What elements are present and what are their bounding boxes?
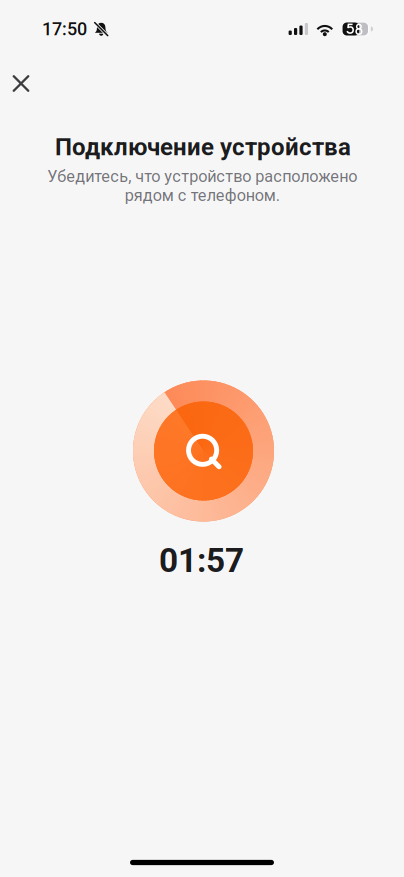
staticText: 17:50	[42, 18, 87, 40]
staticText: Убедитесь, что устройство расположено ря…	[47, 167, 357, 205]
staticText: 01:57	[159, 541, 244, 580]
button[interactable]: Закрыть	[3, 65, 39, 102]
staticText: Подключение устройства	[55, 133, 351, 161]
